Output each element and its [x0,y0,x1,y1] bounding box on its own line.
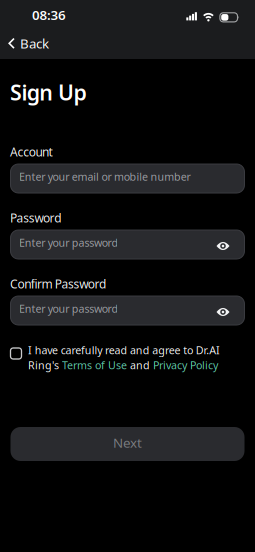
staticText: Terms of Use [62,358,127,372]
staticText: Privacy Policy [153,358,218,372]
staticText: and [127,358,153,372]
button[interactable]: Back [8,34,49,52]
button[interactable]: Next [10,427,244,461]
staticText: Back [20,34,49,52]
staticText: Confirm Password [10,276,106,292]
button[interactable]: Show password [210,231,236,260]
button[interactable]: Enter your email or mobile number [10,164,244,193]
button[interactable]: Privacy Policy [153,358,218,372]
staticText: Account [10,144,53,160]
button[interactable]: Show password [210,297,236,326]
staticText: 08:36 [32,6,66,24]
staticText: Enter your email or mobile number [19,169,191,184]
staticText: Enter your password [19,235,118,250]
staticText: Next [113,434,142,451]
button[interactable]: Terms of Use [62,358,127,372]
staticText: Sign Up [10,78,86,106]
staticText: Ring's [28,358,62,372]
button[interactable]: Agree to terms [10,348,21,359]
button[interactable]: Enter your password [10,296,244,325]
staticText: Enter your password [19,301,118,316]
button[interactable]: Enter your password [10,230,244,259]
staticText: Password [10,210,61,226]
staticText: I have carefully read and agree to Dr.AI [28,343,220,357]
